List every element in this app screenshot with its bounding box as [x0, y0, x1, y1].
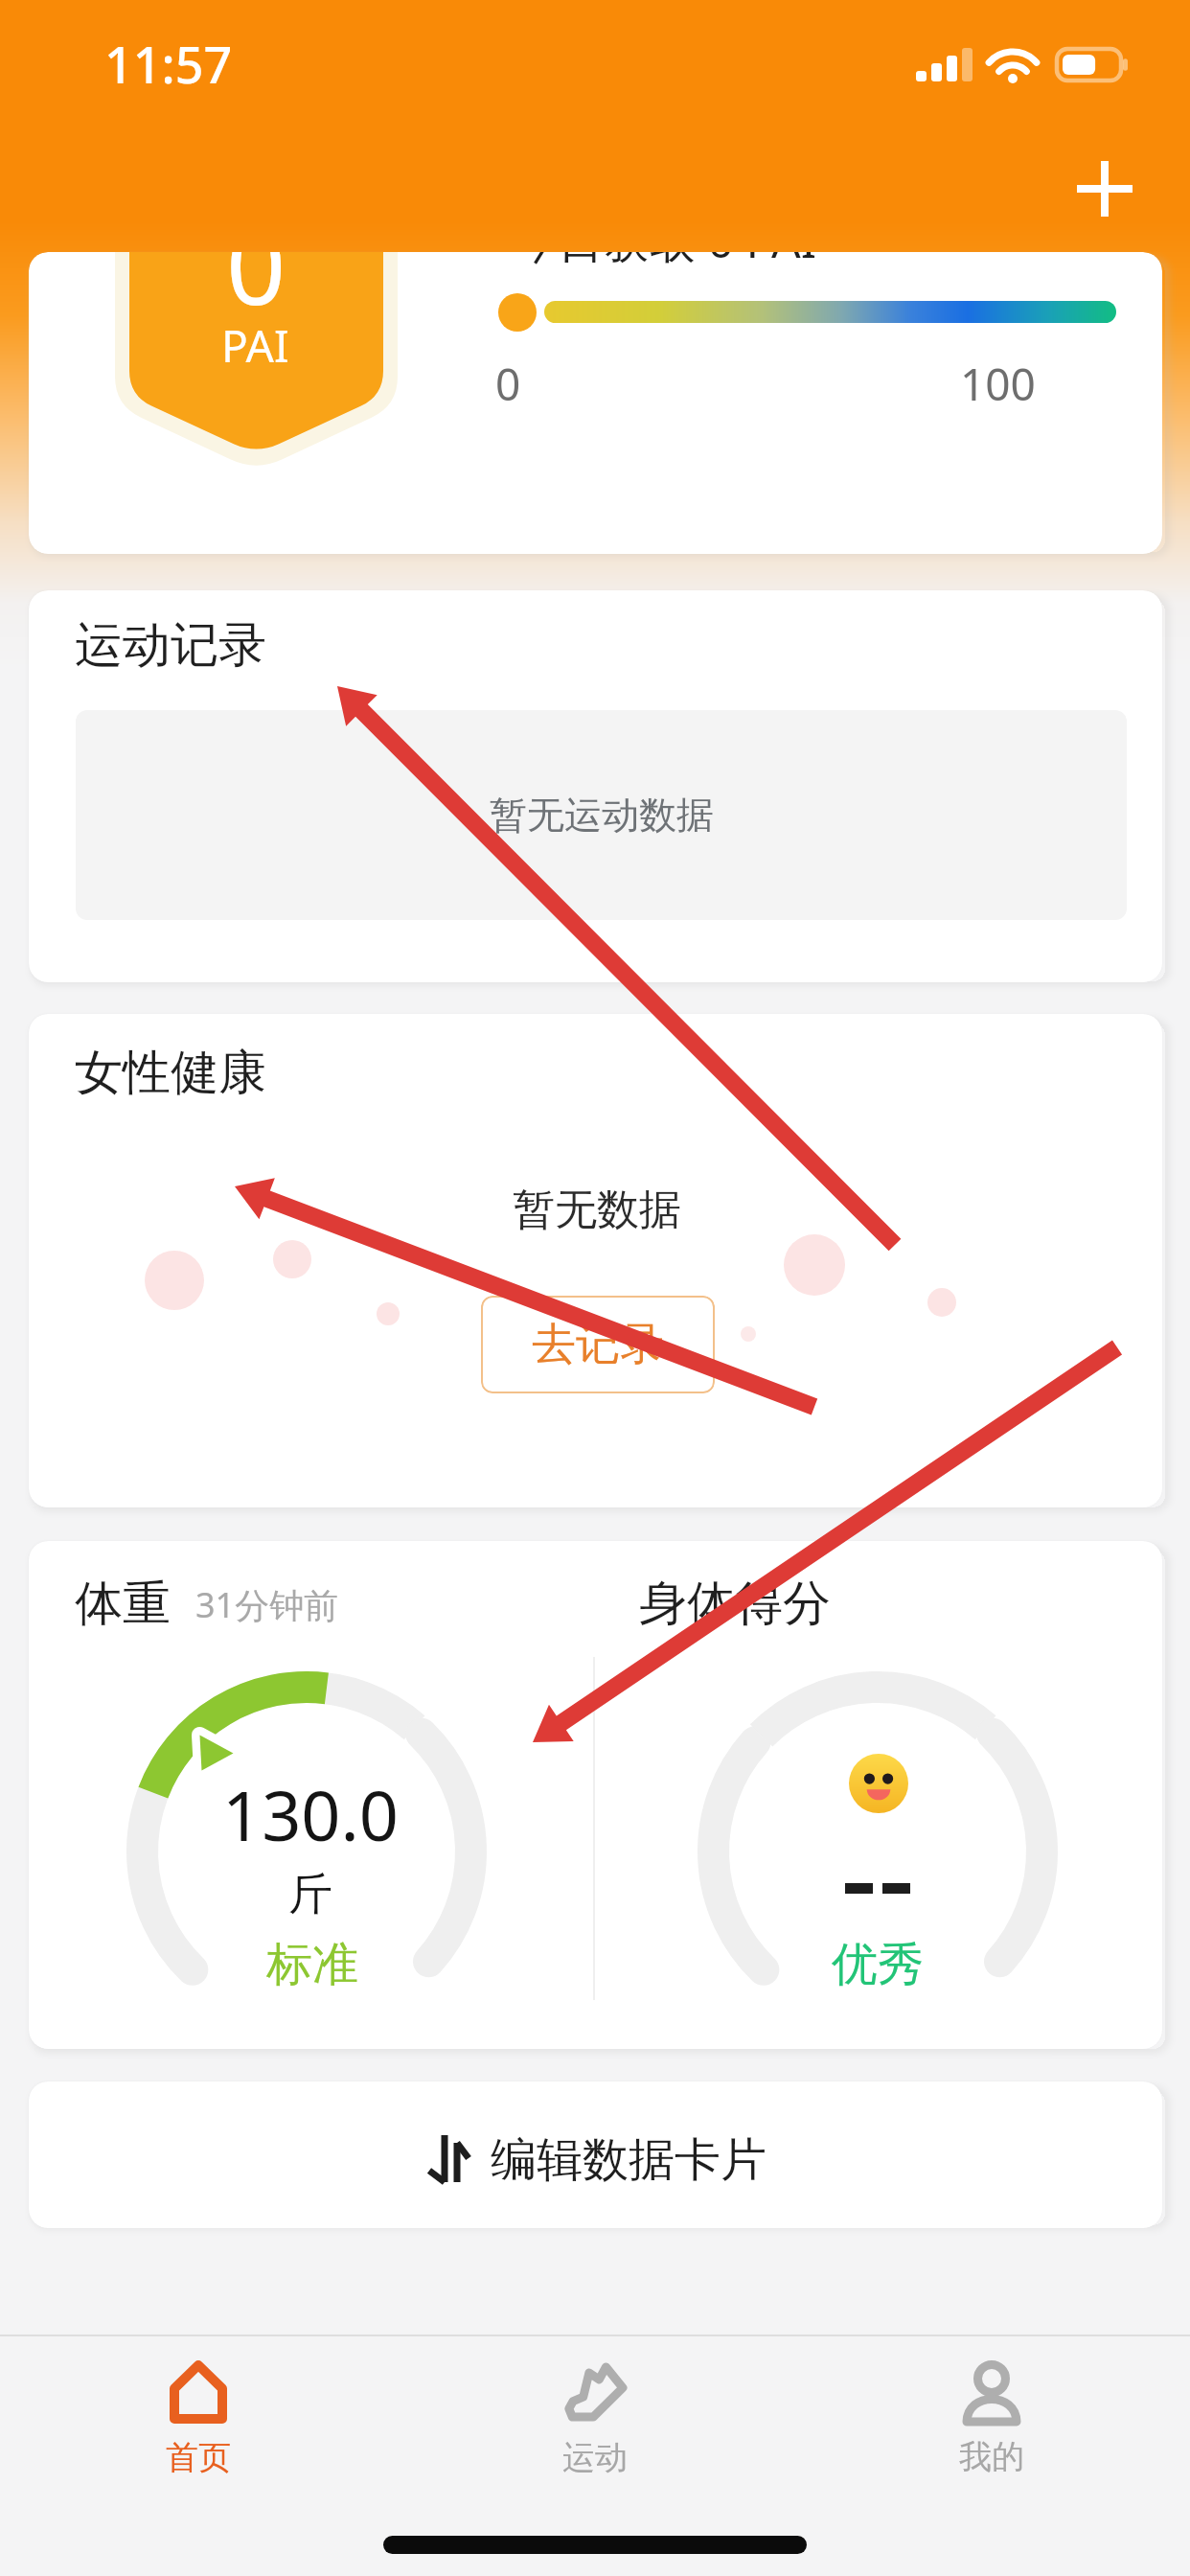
staticText: 130.0 [222, 1767, 400, 1861]
staticText: PAI [221, 315, 289, 376]
button[interactable]: 我的 [793, 2328, 1190, 2567]
staticText: 身体得分 [639, 1574, 831, 1634]
button[interactable]: 体重 [29, 1541, 1162, 2049]
button[interactable]: 运动记录 [29, 590, 1162, 982]
button[interactable]: Add [1054, 138, 1155, 239]
staticText: 斤 [288, 1867, 332, 1922]
staticText: 暂无运动数据 [490, 792, 714, 839]
staticText: 暂无数据 [513, 1184, 681, 1236]
button[interactable]: 运动 [397, 2328, 793, 2567]
staticText: 编辑数据卡片 [491, 2131, 767, 2189]
staticText: 首页 [166, 2437, 231, 2478]
staticText: 今日获取 0 PAI [512, 252, 817, 272]
staticText: 运动记录 [75, 615, 266, 676]
staticText: 我的 [959, 2436, 1024, 2477]
staticText: 女性健康 [75, 1043, 266, 1103]
staticText: 运动 [562, 2437, 628, 2478]
button[interactable]: 女性健康 [29, 1014, 1162, 1507]
staticText: 标准 [266, 1936, 358, 1993]
staticText: 100 [960, 354, 1036, 414]
staticText: 31分钟前 [195, 1581, 339, 1628]
button[interactable]: 首页 [0, 2328, 397, 2567]
staticText: 0 [495, 354, 521, 414]
staticText: 11:57 [104, 30, 233, 98]
button[interactable]: 0 [29, 252, 1162, 554]
button[interactable]: 编辑数据卡片 [29, 2081, 1162, 2228]
button[interactable]: 去记录 [481, 1296, 715, 1393]
staticText: 体重 [75, 1574, 171, 1634]
staticText: 0 [226, 252, 286, 334]
staticText: 优秀 [832, 1936, 924, 1993]
staticText: 去记录 [532, 1317, 664, 1372]
